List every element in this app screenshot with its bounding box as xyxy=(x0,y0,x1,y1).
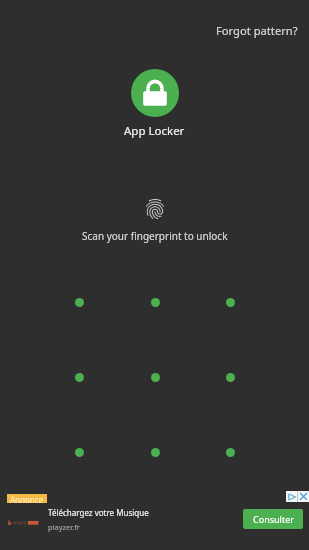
button[interactable]: App Locker xyxy=(131,69,179,117)
button[interactable]: Pattern dot 5 xyxy=(135,357,175,397)
button[interactable]: Pattern dot 2 xyxy=(135,282,175,322)
staticText: App Locker xyxy=(124,123,185,139)
button[interactable]: Pattern dot 3 xyxy=(210,282,250,322)
button[interactable]: Consulter xyxy=(243,509,303,529)
button[interactable]: AdChoices xyxy=(286,491,297,502)
staticText: Téléchargez votre Musique xyxy=(48,507,149,518)
button[interactable]: Scan fingerprint xyxy=(143,197,167,221)
button[interactable]: Forgot pattern? xyxy=(210,19,304,42)
staticText: Consulter xyxy=(253,513,294,525)
staticText: Annonce xyxy=(10,494,44,503)
button[interactable]: Pattern dot 9 xyxy=(210,432,250,472)
button[interactable]: Téléchargez votre Musique xyxy=(0,505,235,531)
button[interactable]: Pattern dot 1 xyxy=(59,282,99,322)
button[interactable]: Pattern dot 4 xyxy=(59,357,99,397)
staticText: playzer.fr xyxy=(48,522,80,532)
button[interactable]: Close ad xyxy=(298,491,309,502)
staticText: Forgot pattern? xyxy=(216,23,298,38)
staticText: Scan your fingerprint to unlock xyxy=(82,229,228,243)
button[interactable]: Pattern dot 8 xyxy=(135,432,175,472)
button[interactable]: Pattern dot 7 xyxy=(59,432,99,472)
button[interactable]: Pattern dot 6 xyxy=(210,357,250,397)
